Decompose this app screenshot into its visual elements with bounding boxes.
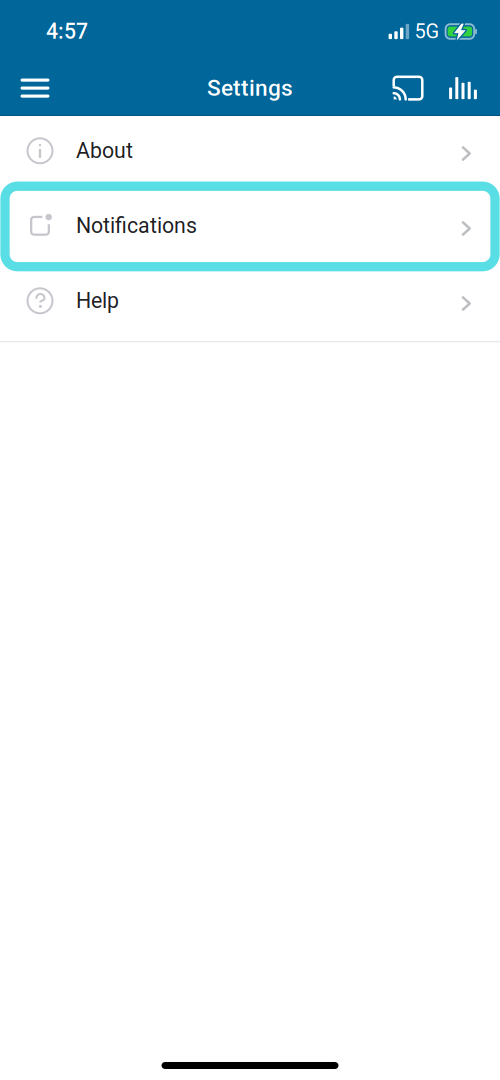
staticText: Settings — [207, 75, 293, 101]
staticText: Notifications — [76, 213, 197, 238]
button[interactable]: Equalizer — [439, 58, 487, 119]
button[interactable]: About — [0, 116, 500, 191]
staticText: Help — [76, 288, 119, 313]
button[interactable]: Cast to device — [383, 58, 433, 119]
staticText: About — [76, 138, 133, 163]
staticText: 5G — [415, 20, 440, 43]
button[interactable]: Help — [0, 266, 500, 341]
button[interactable]: Menu — [6, 58, 64, 119]
button[interactable]: Notifications — [0, 191, 500, 266]
staticText: 4:57 — [46, 19, 88, 44]
